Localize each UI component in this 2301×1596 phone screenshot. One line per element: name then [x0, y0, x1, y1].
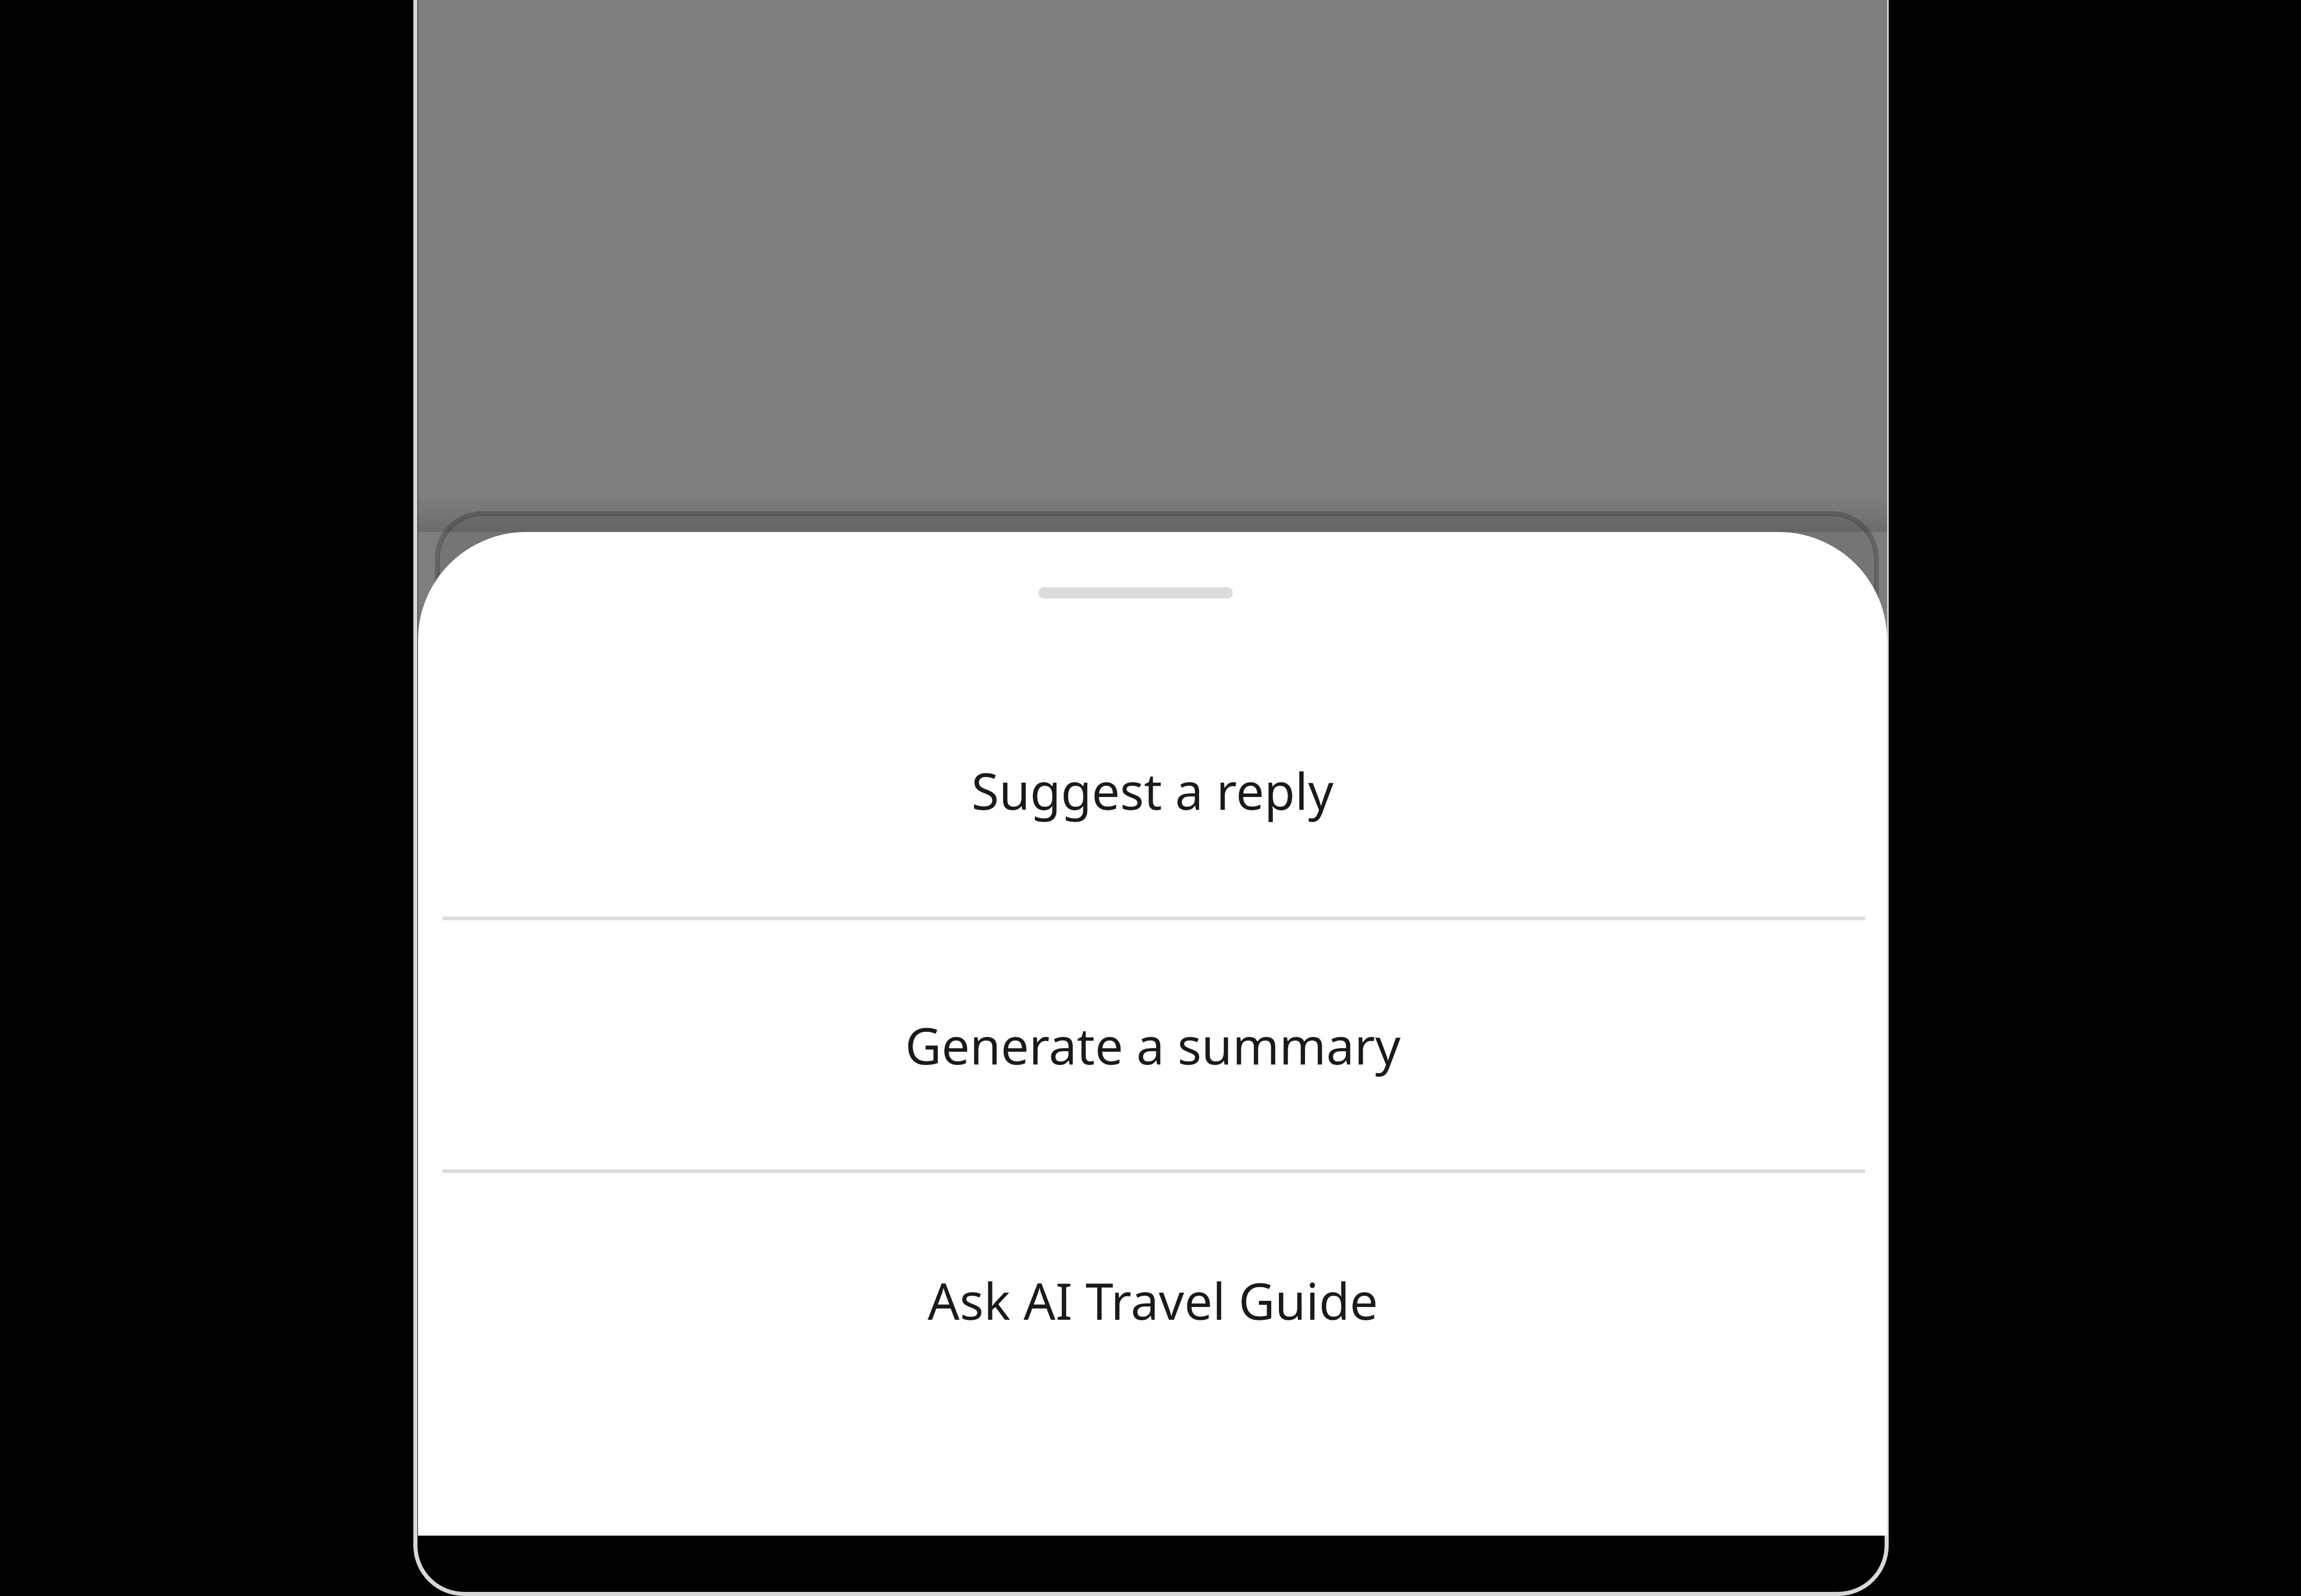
button[interactable]: Ask AI Travel Guide — [418, 1173, 1887, 1427]
staticText: Generate a summary — [905, 1011, 1401, 1079]
other: Drag handle — [1038, 587, 1233, 598]
button[interactable]: Generate a summary — [418, 920, 1887, 1169]
staticText: Ask AI Travel Guide — [927, 1266, 1378, 1334]
staticText: Suggest a reply — [971, 756, 1334, 824]
button[interactable]: Suggest a reply — [418, 663, 1887, 917]
